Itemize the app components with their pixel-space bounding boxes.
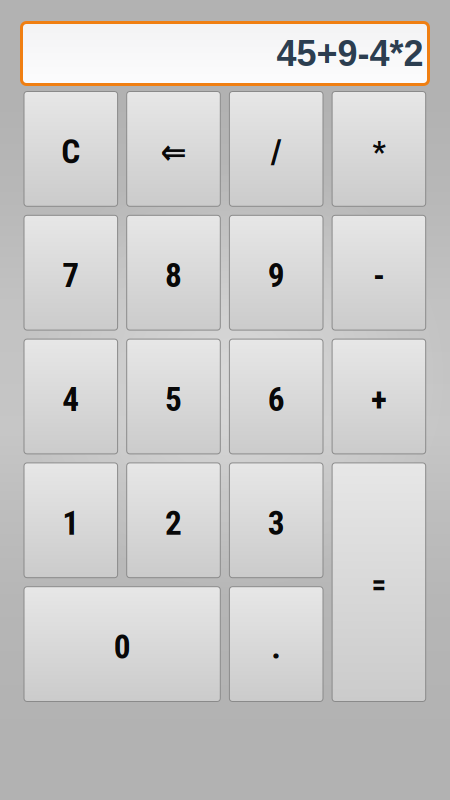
- button[interactable]: 3: [229, 463, 323, 578]
- staticText: =: [371, 568, 386, 602]
- staticText: /: [271, 132, 282, 171]
- button[interactable]: 8: [127, 215, 220, 330]
- staticText: 5: [165, 380, 182, 419]
- button[interactable]: 7: [24, 215, 118, 330]
- staticText: 0: [114, 628, 131, 667]
- button[interactable]: ⇐: [127, 91, 220, 206]
- staticText: 7: [62, 256, 79, 295]
- staticText: ⇐: [160, 132, 186, 172]
- button[interactable]: 9: [229, 215, 323, 330]
- button[interactable]: .: [229, 587, 323, 701]
- button[interactable]: +: [332, 339, 426, 454]
- staticText: 8: [165, 256, 182, 295]
- button[interactable]: /: [229, 91, 323, 206]
- staticText: 4: [62, 380, 79, 419]
- staticText: .: [271, 628, 281, 667]
- button[interactable]: =: [332, 463, 426, 701]
- staticText: 6: [268, 380, 285, 419]
- staticText: 2: [165, 504, 182, 543]
- staticText: 3: [268, 504, 285, 543]
- button[interactable]: *: [332, 91, 426, 206]
- staticText: *: [372, 135, 385, 169]
- staticText: C: [61, 132, 80, 171]
- button[interactable]: 6: [229, 339, 323, 454]
- staticText: +: [371, 380, 387, 419]
- button[interactable]: -: [332, 215, 426, 330]
- button[interactable]: 0: [24, 587, 220, 701]
- staticText: 1: [62, 504, 79, 543]
- button[interactable]: 5: [127, 339, 220, 454]
- button[interactable]: C: [24, 91, 118, 206]
- button[interactable]: 4: [24, 339, 118, 454]
- staticText: 45+9-4*2: [276, 33, 423, 74]
- staticText: -: [373, 256, 385, 295]
- staticText: 9: [268, 256, 285, 295]
- button[interactable]: 2: [127, 463, 220, 578]
- button[interactable]: 1: [24, 463, 118, 578]
